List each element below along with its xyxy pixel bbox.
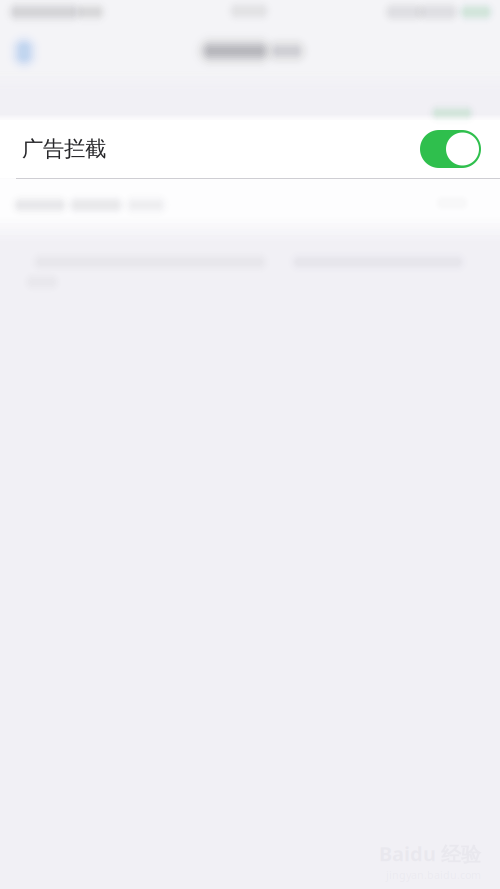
staticText: 广告拦截: [22, 136, 106, 162]
button[interactable]: Back: [0, 0, 500, 889]
staticText: Baidu 经验: [379, 840, 481, 867]
button[interactable]: 广告拦截: [0, 120, 500, 178]
